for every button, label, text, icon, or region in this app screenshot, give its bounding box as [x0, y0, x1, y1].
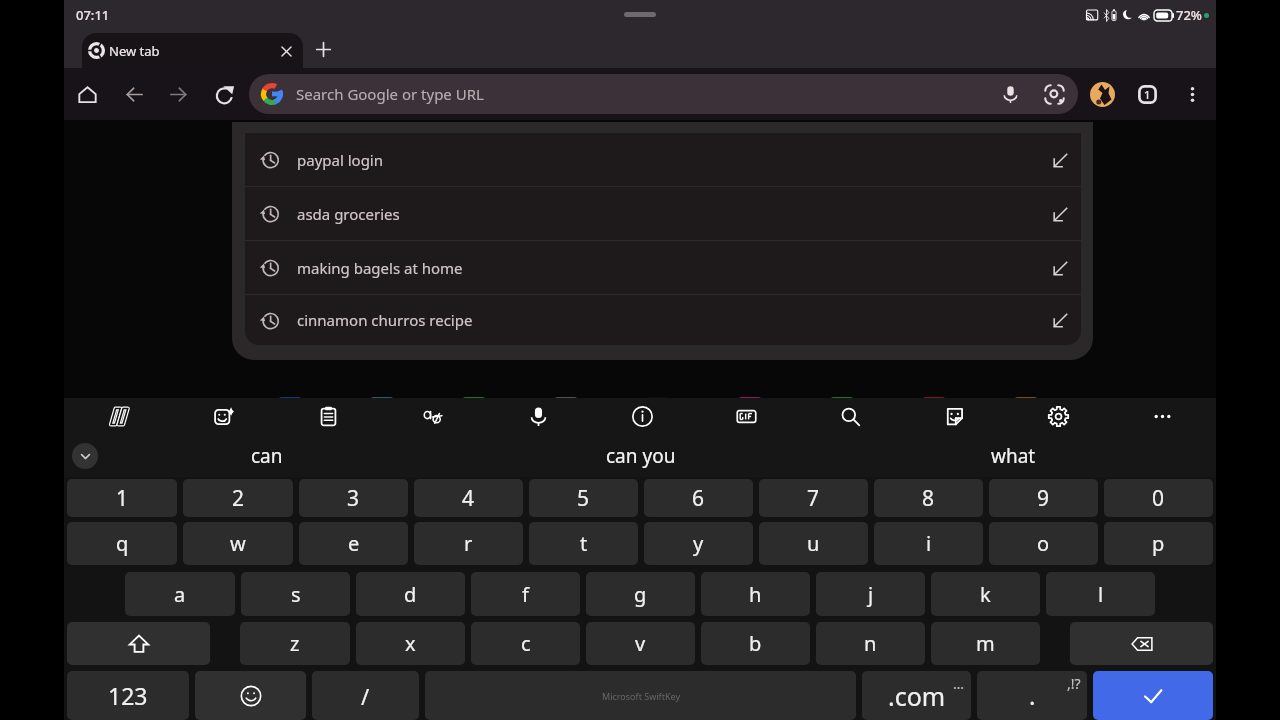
button[interactable]: 3 — [299, 479, 408, 517]
button[interactable]: x — [356, 622, 465, 665]
button[interactable]: New tab — [305, 31, 341, 67]
button[interactable]: u — [759, 522, 868, 565]
button[interactable]: m — [931, 622, 1040, 665]
button[interactable]: j — [816, 572, 925, 616]
button[interactable]: More options — [1172, 74, 1212, 114]
button[interactable]: Fill query — [1042, 196, 1078, 232]
button[interactable]: Stickers — [171, 398, 276, 435]
button[interactable]: g — [586, 572, 695, 616]
staticText: 0 — [1152, 484, 1165, 513]
staticText: 1 — [1144, 87, 1151, 102]
button[interactable]: Forward — [156, 72, 200, 116]
button[interactable]: Translate — [381, 398, 486, 435]
staticText: u — [807, 530, 820, 557]
button[interactable]: f — [471, 572, 580, 616]
button[interactable]: Profile — [1080, 72, 1124, 116]
button[interactable]: Space — [425, 671, 856, 720]
button[interactable]: o — [989, 522, 1098, 565]
button[interactable]: Fill query — [1042, 250, 1078, 286]
button[interactable]: Voice input — [486, 398, 590, 435]
button[interactable]: cinnamon churros recipe — [245, 295, 1081, 345]
button[interactable]: r — [414, 522, 523, 565]
button[interactable]: 1 — [67, 479, 177, 517]
button[interactable]: can you — [454, 435, 827, 477]
staticText: g — [634, 581, 647, 608]
button[interactable]: Enter — [1093, 671, 1213, 720]
button[interactable]: n — [816, 622, 925, 665]
button[interactable]: making bagels at home — [245, 241, 1081, 294]
button[interactable]: i — [874, 522, 983, 565]
button[interactable]: k — [931, 572, 1040, 616]
staticText: r — [464, 530, 473, 557]
button[interactable]: .com — [862, 671, 971, 720]
button[interactable]: h — [701, 572, 810, 616]
button[interactable]: Shift — [67, 622, 210, 665]
button[interactable]: t — [529, 522, 638, 565]
button[interactable]: 9 — [989, 479, 1098, 517]
button[interactable]: Close tab — [272, 37, 300, 65]
button[interactable]: Reload — [203, 72, 247, 116]
staticText: can you — [606, 443, 676, 469]
button[interactable]: 4 — [414, 479, 523, 517]
button[interactable]: 123 — [67, 671, 189, 720]
button[interactable]: Clipboard — [276, 398, 381, 435]
staticText: . — [1029, 679, 1036, 712]
button[interactable]: 8 — [874, 479, 983, 517]
button[interactable]: Emoji — [195, 671, 306, 720]
button[interactable]: Tab switcher — [1125, 72, 1169, 116]
staticText: l — [1098, 581, 1104, 608]
button[interactable]: 0 — [1104, 479, 1213, 517]
button[interactable]: b — [701, 622, 810, 665]
button[interactable]: Settings — [1006, 398, 1110, 435]
button[interactable]: Fill query — [1042, 142, 1078, 178]
button[interactable]: l — [1046, 572, 1155, 616]
staticText: i — [926, 530, 932, 557]
button[interactable]: a — [125, 572, 235, 616]
button[interactable]: y — [644, 522, 753, 565]
button[interactable]: v — [586, 622, 695, 665]
button[interactable]: Emoji sticker — [902, 398, 1006, 435]
button[interactable]: c — [471, 622, 580, 665]
button[interactable]: e — [299, 522, 408, 565]
button[interactable]: Backspace — [1070, 622, 1213, 665]
button[interactable]: . — [977, 671, 1087, 720]
button[interactable]: Back — [112, 72, 156, 116]
button[interactable]: 7 — [759, 479, 868, 517]
button[interactable]: Search Google or type URL — [249, 74, 1078, 114]
button[interactable]: More — [1110, 398, 1214, 435]
staticText: Microsoft SwiftKey — [602, 690, 680, 702]
staticText: c — [521, 630, 531, 657]
button[interactable]: w — [183, 522, 293, 565]
button[interactable]: / — [312, 671, 419, 720]
staticText: / — [361, 681, 370, 711]
button[interactable]: z — [240, 622, 350, 665]
staticText: 5 — [577, 484, 590, 513]
button[interactable]: 6 — [644, 479, 753, 517]
staticText: cinnamon churros recipe — [297, 310, 473, 330]
button[interactable]: Collapse keyboard — [72, 443, 98, 469]
staticText: 3 — [347, 484, 360, 513]
button[interactable]: asda groceries — [245, 187, 1081, 240]
button[interactable]: 2 — [183, 479, 293, 517]
staticText: 6 — [692, 484, 705, 513]
button[interactable]: d — [356, 572, 465, 616]
button[interactable]: Google Lens — [1032, 74, 1076, 114]
button[interactable]: paypal login — [245, 133, 1081, 186]
button[interactable]: New tab — [82, 33, 303, 68]
button[interactable]: 5 — [529, 479, 638, 517]
button[interactable]: Voice search — [988, 74, 1032, 114]
staticText: paypal login — [297, 150, 384, 170]
button[interactable]: q — [67, 522, 177, 565]
button[interactable]: Fill query — [1042, 302, 1078, 338]
staticText: what — [991, 443, 1036, 469]
button[interactable]: SwiftKey — [66, 398, 171, 435]
button[interactable]: Home — [65, 72, 109, 116]
button[interactable]: what — [827, 435, 1200, 477]
button[interactable]: Search — [798, 398, 902, 435]
button[interactable]: GIF — [694, 398, 798, 435]
button[interactable]: p — [1104, 522, 1213, 565]
button[interactable]: can — [80, 435, 454, 477]
button[interactable]: s — [241, 572, 350, 616]
button[interactable]: Info — [590, 398, 694, 435]
staticText: … — [953, 674, 965, 693]
